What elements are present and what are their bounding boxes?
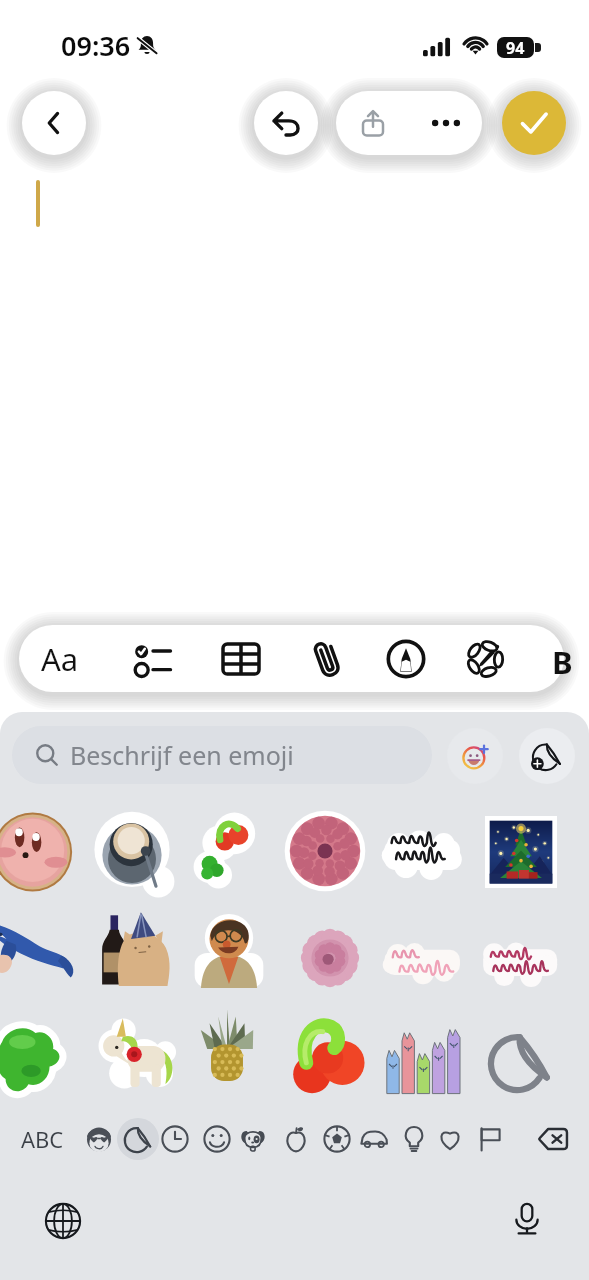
button[interactable]: Done [502,91,566,155]
button[interactable]: Category 9 [392,1117,436,1161]
button[interactable]: Category 11 [468,1117,512,1161]
button[interactable]: Sticker [285,1012,367,1094]
button[interactable]: Sticker [283,809,367,893]
button[interactable]: Sticker [299,927,361,989]
button[interactable]: Category 6 [274,1117,318,1161]
button[interactable]: Undo [254,91,318,155]
button[interactable]: Create sticker [519,728,575,784]
button[interactable]: Checklist [120,625,186,692]
button[interactable]: Category 10 [428,1117,472,1161]
button[interactable]: Voice input [506,1198,548,1240]
button[interactable]: Sticker [379,816,469,906]
staticText: 09:36 [61,27,131,64]
staticText: 94 [506,37,525,58]
button[interactable]: Sticker [382,1012,462,1092]
button[interactable]: Sticker [92,811,172,891]
button[interactable]: Sticker [190,910,268,988]
button[interactable]: More options [409,91,482,155]
button[interactable]: Sticker [188,811,268,891]
staticText: ABC [21,1124,64,1154]
button[interactable]: Sticker [487,1028,553,1094]
button[interactable]: Attach [294,625,360,692]
button[interactable]: Sticker [97,1014,173,1090]
button[interactable]: Category 3 [153,1117,197,1161]
button[interactable]: Category 2 [116,1117,160,1161]
button[interactable]: Category 8 [352,1117,396,1161]
button[interactable]: Sticker [485,816,557,888]
button[interactable]: Category 7 [315,1117,359,1161]
button[interactable]: Category 5 [231,1117,275,1161]
button[interactable]: ABC [12,1110,72,1168]
button[interactable]: Table [208,625,274,692]
button[interactable]: Sticker [93,910,169,986]
button[interactable]: Draw [373,625,439,692]
button[interactable]: Sticker [0,810,78,894]
button[interactable]: Share [336,91,409,155]
button[interactable]: Category 1 [77,1117,121,1161]
button[interactable]: Sticker [381,928,465,1012]
staticText: B [552,641,573,683]
button[interactable]: Sticker [479,929,563,1013]
button[interactable]: Writing tools [452,625,518,692]
button[interactable]: Aa [24,625,96,692]
button[interactable]: Switch keyboard [42,1200,84,1242]
button[interactable]: Category 4 [195,1117,239,1161]
button[interactable]: Create emoji [447,728,503,784]
button[interactable]: Sticker [0,904,80,996]
button[interactable]: Beschrijf een emoji [12,726,432,784]
button[interactable]: Back [22,91,86,155]
button[interactable]: Sticker [0,1012,83,1100]
button[interactable]: Backspace [532,1117,576,1161]
staticText: Beschrijf een emoji [70,738,294,772]
staticText: Aa [41,638,79,680]
button[interactable]: Sticker [189,1002,265,1078]
